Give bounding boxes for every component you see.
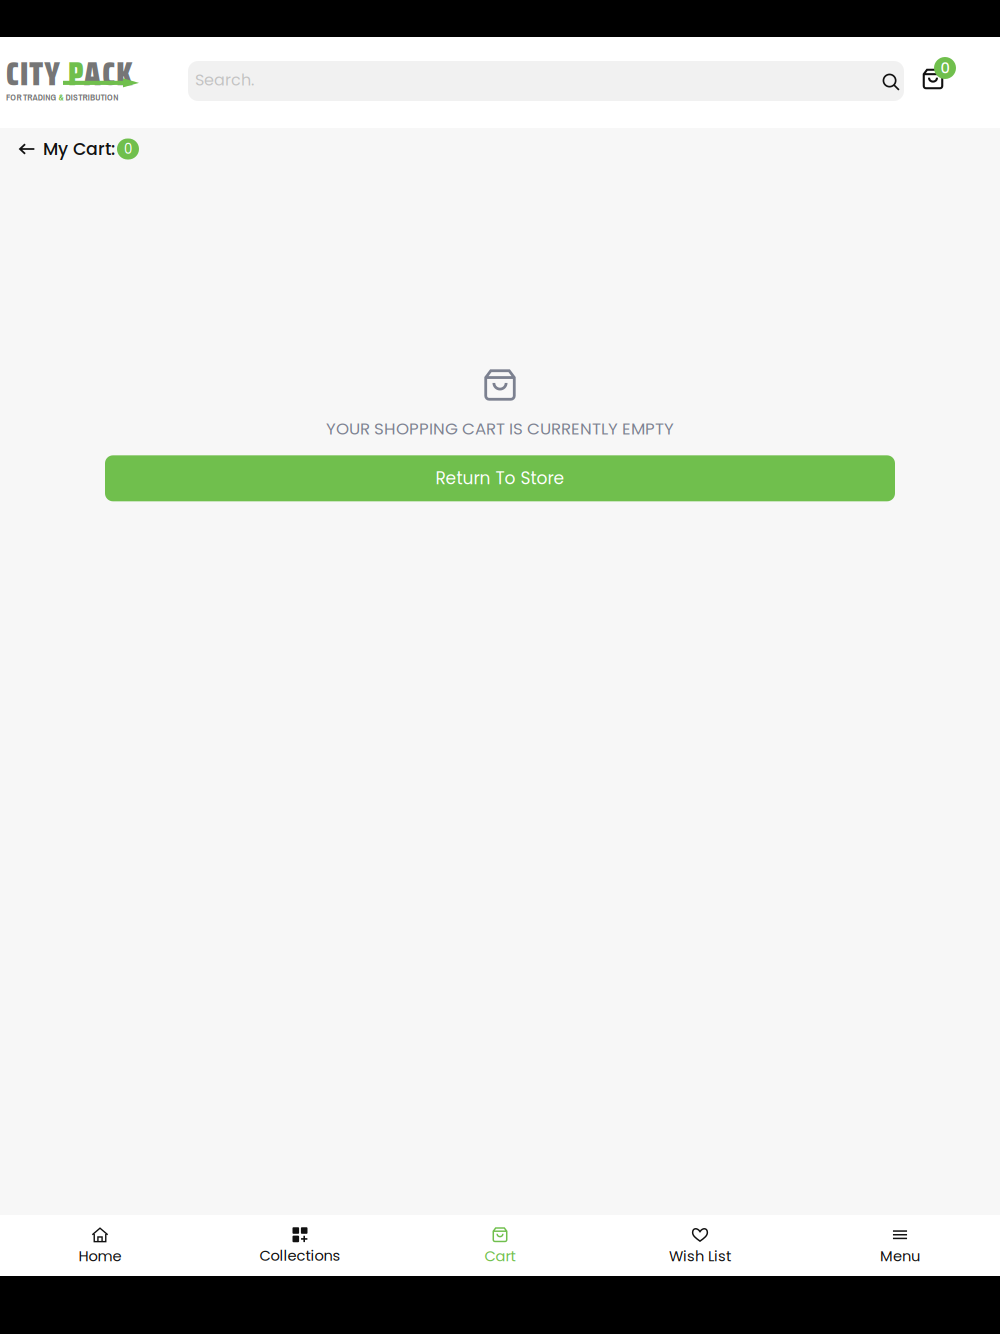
staticText: O — [107, 91, 113, 103]
staticText: My Cart: — [43, 137, 115, 161]
staticText: 0 — [940, 58, 949, 78]
staticText: & — [58, 91, 63, 103]
staticText: T — [23, 91, 27, 103]
staticText: Y — [44, 49, 60, 99]
button[interactable]: Cart — [922, 57, 968, 103]
staticText: T — [29, 49, 43, 99]
staticText: I — [88, 91, 90, 103]
staticText: I — [20, 49, 28, 99]
staticText: N — [45, 91, 50, 103]
staticText: F — [6, 91, 10, 103]
staticText: O — [10, 91, 16, 103]
staticText: T — [78, 91, 82, 103]
staticText: A — [84, 49, 101, 99]
staticText: S — [73, 91, 78, 103]
staticText: I — [105, 91, 107, 103]
staticText: D — [65, 91, 70, 103]
staticText: K — [116, 49, 132, 99]
button[interactable]: Cart — [400, 1215, 600, 1276]
staticText: C — [102, 49, 115, 99]
staticText: Collections — [259, 1245, 340, 1266]
button[interactable]: Collections — [200, 1215, 400, 1276]
staticText: I — [71, 91, 73, 103]
staticText — [22, 91, 23, 103]
staticText: Search. — [195, 69, 254, 91]
staticText: B — [90, 91, 95, 103]
staticText: A — [32, 91, 37, 103]
staticText: R — [27, 91, 32, 103]
staticText: G — [50, 91, 56, 103]
button[interactable]: Search — [877, 61, 901, 101]
staticText: Wish List — [669, 1246, 731, 1266]
staticText: YOUR SHOPPING CART IS CURRENTLY EMPTY — [326, 417, 674, 440]
button[interactable]: Return To Store — [105, 455, 895, 501]
staticText: P — [68, 49, 83, 99]
staticText: C — [6, 49, 19, 99]
staticText: R — [82, 91, 87, 103]
staticText: Return To Store — [435, 466, 564, 490]
button[interactable]: My Cart: — [0, 129, 139, 169]
staticText: 0 — [124, 140, 132, 158]
staticText: Cart — [484, 1246, 515, 1266]
staticText: D — [38, 91, 43, 103]
staticText: Home — [78, 1246, 121, 1266]
button[interactable]: City Pack home — [6, 49, 132, 111]
staticText: T — [100, 91, 104, 103]
button[interactable]: Wish List — [600, 1215, 800, 1276]
staticText: U — [95, 91, 100, 103]
staticText: Menu — [880, 1246, 920, 1266]
staticText: I — [43, 91, 45, 103]
staticText: R — [16, 91, 21, 103]
button[interactable]: Menu — [800, 1215, 1000, 1276]
button[interactable]: Home — [0, 1215, 200, 1276]
staticText: N — [113, 91, 118, 103]
